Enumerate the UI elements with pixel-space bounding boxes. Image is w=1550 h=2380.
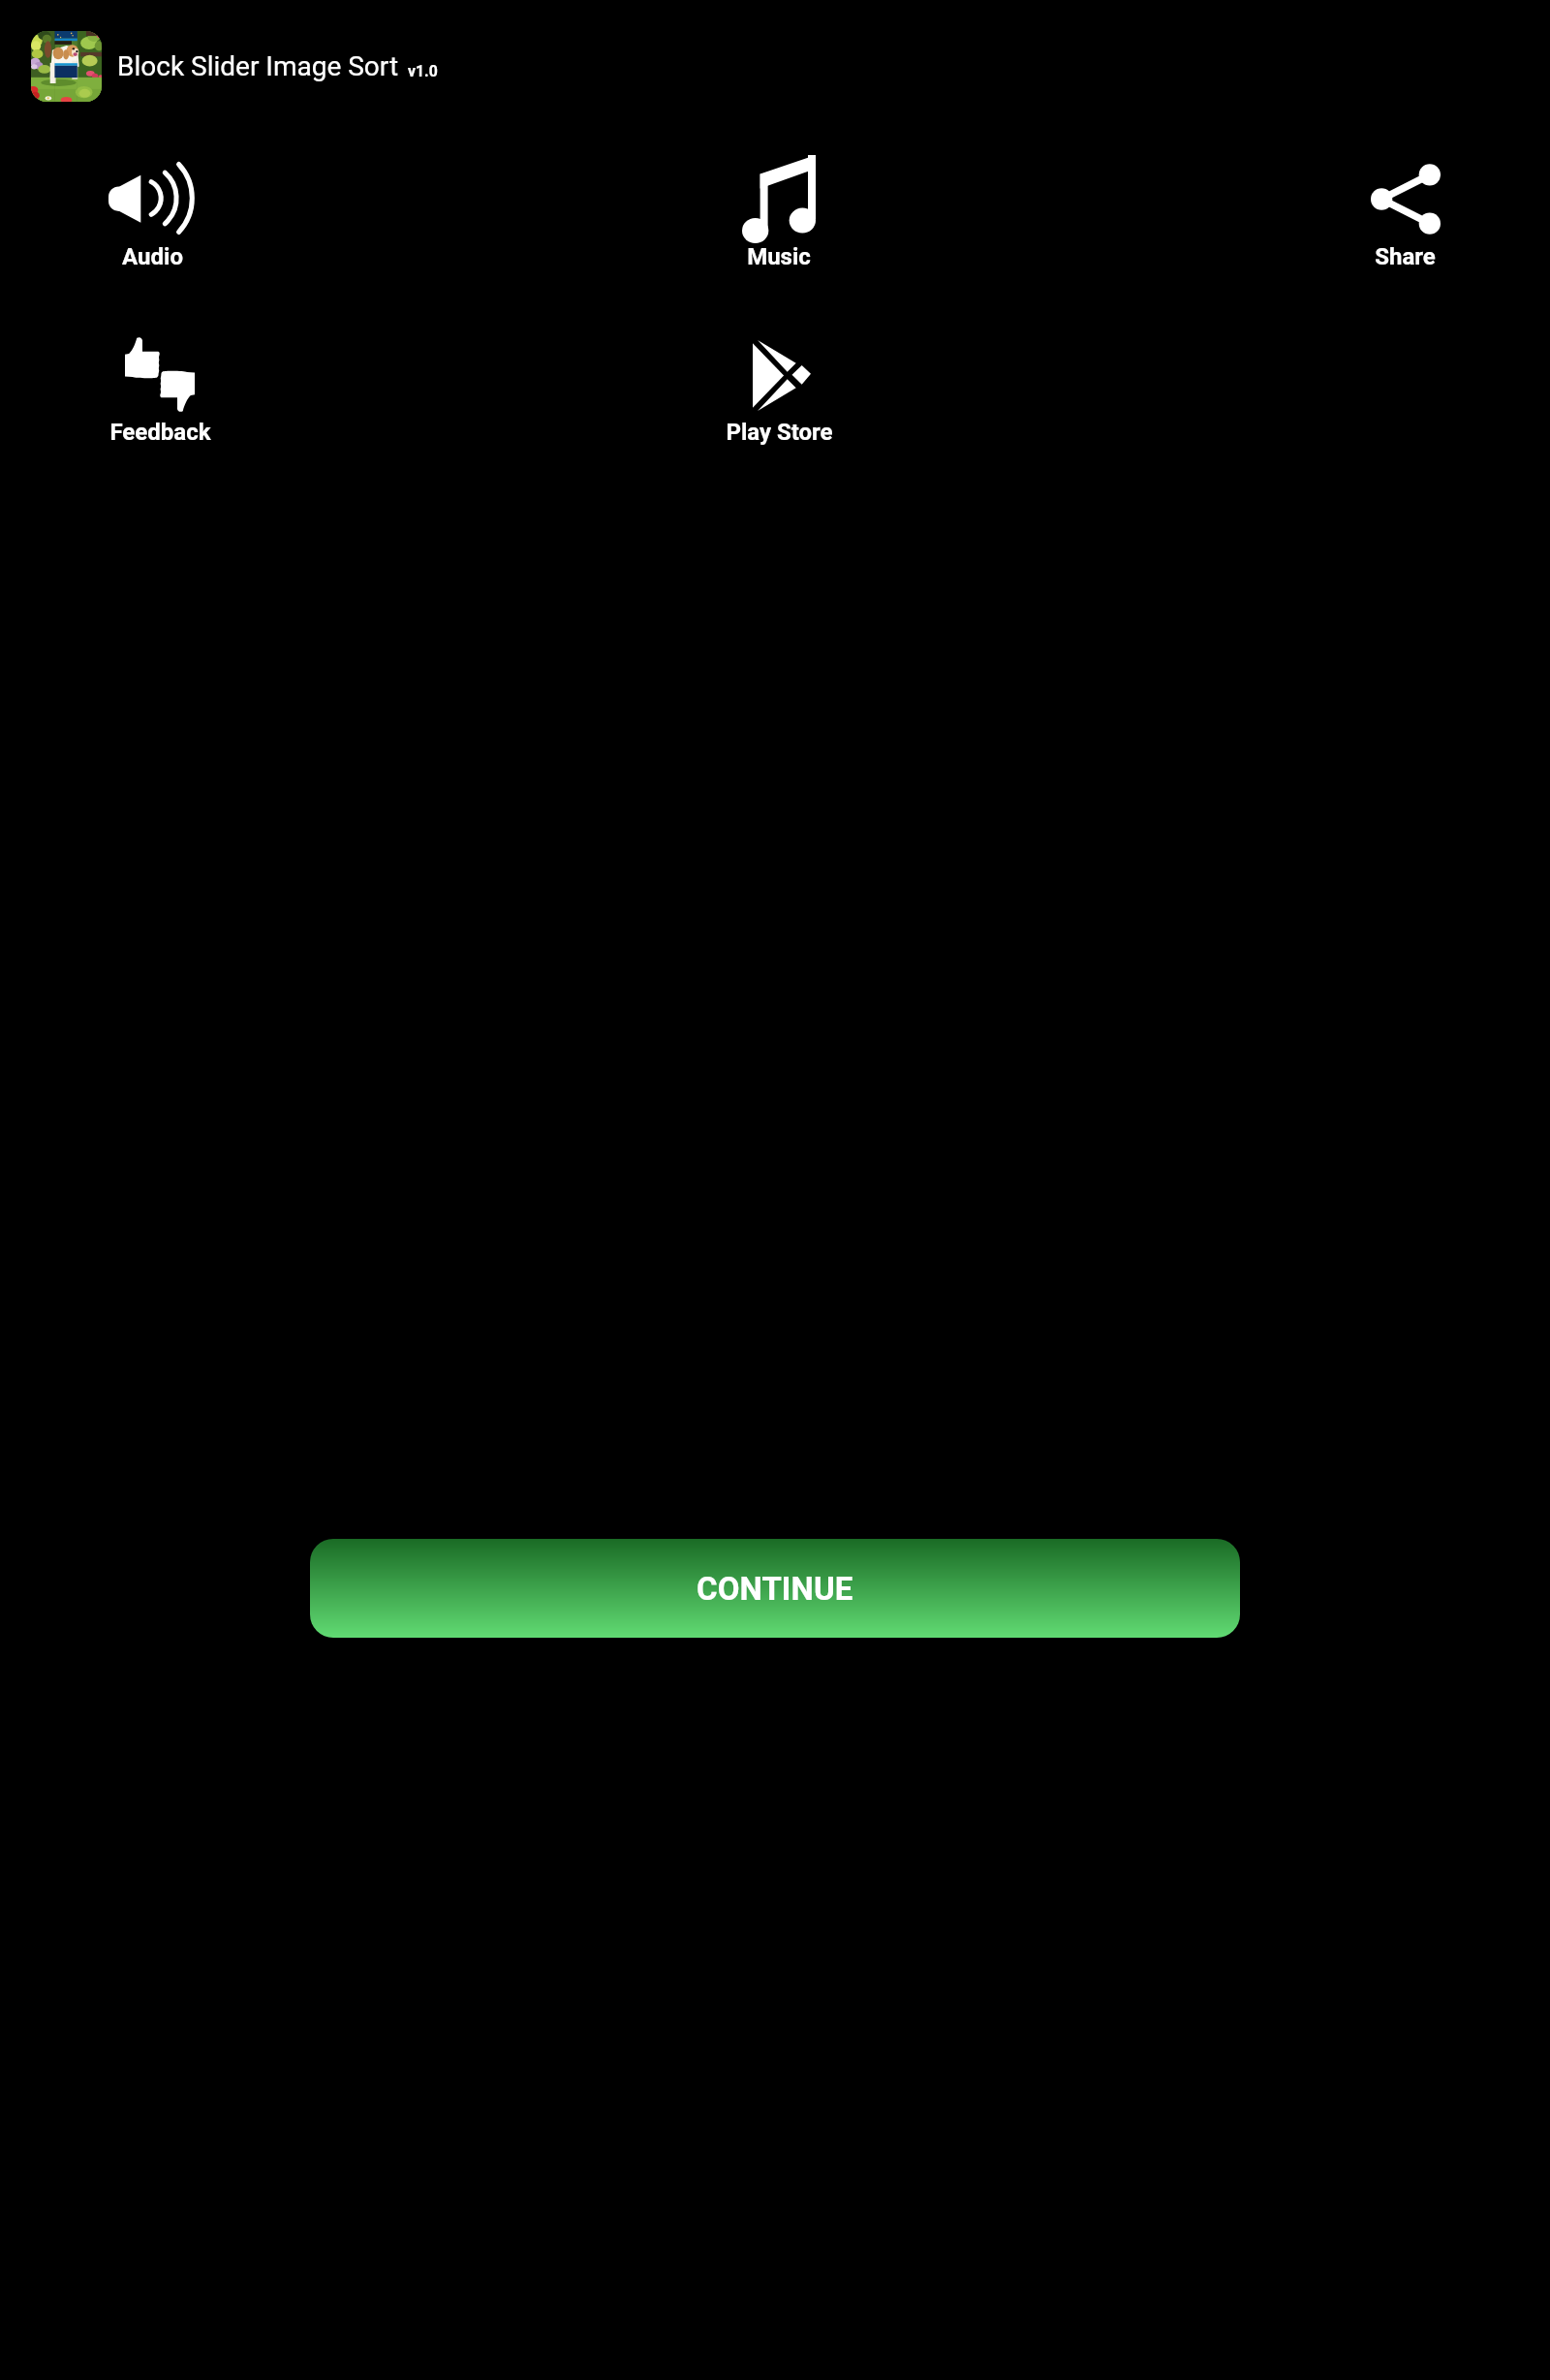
button[interactable]: CONTINUE (310, 1539, 1240, 1638)
staticText: Feedback (109, 419, 211, 446)
staticText: CONTINUE (697, 1570, 853, 1608)
other: Audio (108, 163, 196, 234)
other: Music (742, 155, 816, 243)
staticText: v1.0 (408, 62, 438, 80)
staticText: Block Slider Image Sort (117, 50, 399, 82)
button[interactable]: Block Slider Image Sort (31, 31, 438, 102)
other: Feedback (125, 337, 195, 412)
button[interactable]: Share (1259, 150, 1550, 287)
button[interactable]: Audio (7, 149, 297, 287)
other: Share (1371, 164, 1441, 235)
button[interactable]: Play Store (634, 327, 924, 461)
staticText: Music (747, 243, 811, 270)
staticText: Share (1375, 243, 1436, 270)
button[interactable]: Feedback (15, 324, 305, 461)
staticText: Audio (122, 243, 183, 270)
staticText: Play Store (726, 419, 833, 446)
button[interactable]: Music (634, 141, 924, 287)
other: Play Store (753, 340, 811, 411)
